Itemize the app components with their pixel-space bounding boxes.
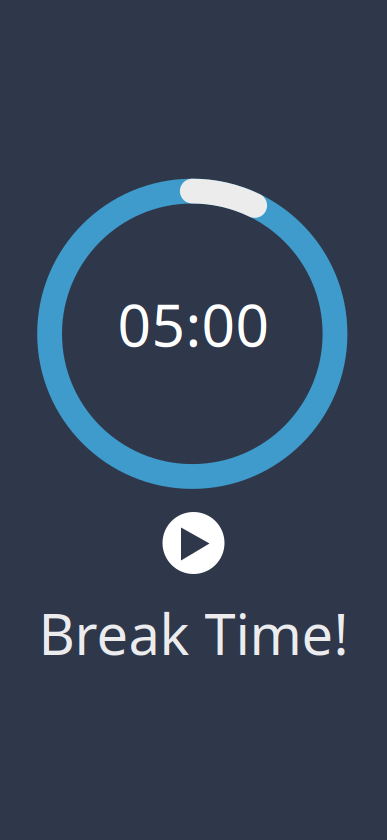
button[interactable]: Start timer <box>162 512 224 574</box>
staticText: 05:00 <box>117 285 269 363</box>
staticText: Break Time! <box>38 596 348 670</box>
